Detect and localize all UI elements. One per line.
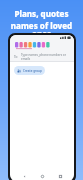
staticText: Plans, quotes: [2, 8, 81, 19]
staticText: Create group: [23, 69, 42, 73]
button[interactable]: Create group: [14, 66, 45, 75]
button[interactable]: Recent apps: [56, 172, 64, 180]
button[interactable]: To: [10, 52, 74, 61]
staticText: names of loved ones: [2, 20, 81, 39]
button[interactable]: Home: [38, 172, 46, 180]
button[interactable]: Back: [20, 172, 28, 180]
staticText: To: [14, 55, 18, 59]
staticText: Type names, phone numbers or emails: [21, 53, 70, 61]
